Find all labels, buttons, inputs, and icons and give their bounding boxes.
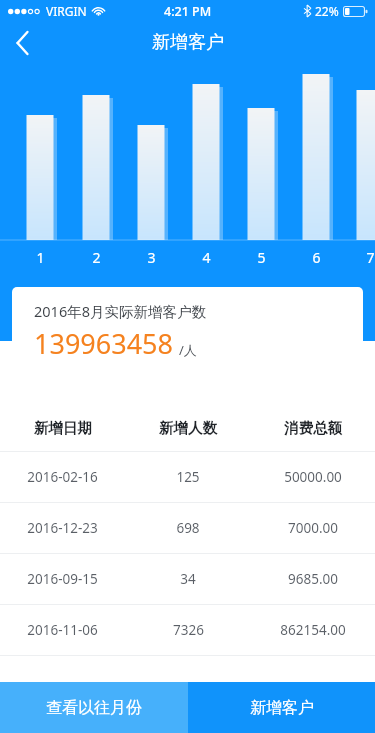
staticText: /人	[179, 341, 197, 359]
staticText: 新增人数	[159, 419, 217, 437]
button[interactable]: 2016-12-23	[0, 503, 375, 553]
staticText: 2016-09-15	[27, 570, 98, 588]
staticText: 7000.00	[288, 519, 338, 537]
button[interactable]: 2016-02-16	[0, 452, 375, 502]
staticText: 2016-12-23	[27, 519, 98, 537]
staticText: 2016-02-16	[27, 468, 98, 486]
staticText: VIRGIN	[46, 3, 87, 19]
staticText: 4:21 PM	[164, 3, 212, 20]
staticText: 新增客户	[152, 31, 224, 54]
staticText: 2	[92, 248, 101, 267]
button[interactable]: 2016-11-06	[0, 605, 375, 655]
staticText: 7326	[173, 621, 204, 639]
button[interactable]: 2016-09-15	[0, 554, 375, 604]
staticText: 34	[180, 570, 196, 588]
staticText: 22%	[315, 3, 339, 19]
staticText: 消费总额	[284, 419, 342, 437]
staticText: 698	[176, 519, 200, 537]
button[interactable]: 新增客户	[188, 682, 375, 733]
staticText: 50000.00	[284, 468, 342, 486]
staticText: 862154.00	[280, 621, 346, 639]
staticText: 2016年8月实际新增客户数	[34, 301, 206, 321]
staticText: 9685.00	[288, 570, 338, 588]
staticText: 6	[312, 248, 321, 267]
button[interactable]: 2016年8月实际新增客户数	[12, 287, 363, 383]
staticText: 1	[36, 248, 45, 267]
staticText: 139963458	[34, 325, 173, 362]
staticText: 3	[147, 248, 156, 267]
staticText: 125	[176, 468, 200, 486]
staticText: 2016-11-06	[27, 621, 98, 639]
staticText: 7	[366, 248, 375, 267]
button[interactable]: 查看以往月份	[0, 682, 188, 733]
staticText: 新增日期	[34, 419, 92, 437]
staticText: 5	[257, 248, 266, 267]
staticText: 查看以往月份	[46, 698, 142, 718]
staticText: 4	[202, 248, 211, 267]
staticText: 新增客户	[250, 698, 314, 718]
button[interactable]: Back	[0, 22, 44, 63]
